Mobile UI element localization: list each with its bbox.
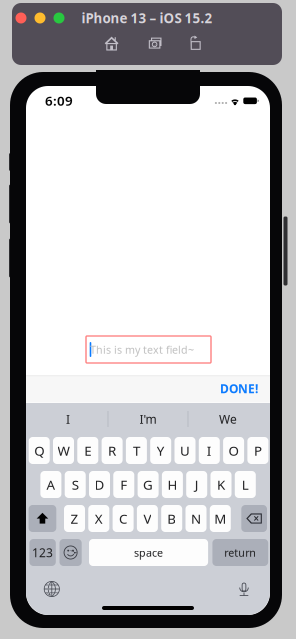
staticText: V (143, 510, 151, 527)
button[interactable]: K (210, 471, 231, 498)
button[interactable]: Dictation (233, 577, 255, 601)
button[interactable]: L (235, 471, 256, 498)
button[interactable]: B (161, 505, 182, 532)
button[interactable]: A (40, 471, 61, 498)
staticText: P (254, 442, 262, 459)
button[interactable]: R (102, 437, 123, 464)
staticText: E (84, 442, 91, 459)
staticText: T (133, 442, 140, 459)
staticText: R (108, 442, 116, 459)
staticText: H (167, 476, 177, 493)
staticText: Z (70, 510, 78, 527)
staticText: 123 (32, 544, 53, 560)
button[interactable]: P (247, 437, 268, 464)
staticText: M (214, 510, 226, 527)
staticText: 6:09 (45, 92, 73, 109)
staticText: D (94, 476, 104, 493)
staticText: space (134, 545, 163, 560)
staticText: N (191, 510, 201, 527)
button[interactable]: Home (99, 31, 125, 55)
staticText: O (229, 442, 239, 459)
staticText: X (95, 510, 103, 527)
button[interactable]: U (174, 437, 195, 464)
staticText: C (119, 510, 127, 527)
button[interactable]: Next keyboard (41, 578, 63, 600)
button[interactable]: Screenshot (142, 31, 168, 55)
button[interactable]: J (186, 471, 207, 498)
staticText: Q (34, 442, 44, 459)
button[interactable]: M (210, 505, 231, 532)
staticText: A (46, 476, 55, 493)
staticText: W (57, 442, 69, 459)
button[interactable]: F (113, 471, 134, 498)
staticText: Y (157, 442, 165, 459)
button[interactable]: T (126, 437, 147, 464)
button[interactable]: Record screen (182, 31, 208, 55)
button[interactable]: X (88, 505, 109, 532)
button[interactable]: We (189, 406, 267, 431)
staticText: G (143, 476, 153, 493)
button[interactable]: I'm (109, 406, 187, 431)
staticText: L (242, 476, 249, 493)
button[interactable]: Minimize (34, 12, 45, 23)
button[interactable]: I (199, 437, 220, 464)
staticText: iPhone 13 – iOS 15.2 (81, 9, 212, 27)
staticText: U (180, 442, 190, 459)
button[interactable]: space (89, 539, 208, 566)
button[interactable]: Delete (241, 505, 267, 532)
staticText: return (224, 545, 256, 560)
button[interactable]: H (162, 471, 183, 498)
button[interactable]: DONE! (212, 375, 266, 401)
staticText: This is my text field~ (90, 342, 194, 357)
button[interactable]: Close (15, 12, 26, 23)
staticText: We (219, 411, 237, 427)
button[interactable]: W (53, 437, 74, 464)
button[interactable]: 123 (29, 539, 56, 566)
button[interactable]: Emoji (59, 539, 82, 566)
staticText: J (195, 476, 199, 493)
button[interactable]: O (223, 437, 244, 464)
staticText: F (120, 476, 127, 493)
button[interactable]: E (77, 437, 98, 464)
button[interactable]: S (65, 471, 86, 498)
button[interactable]: Z (64, 505, 85, 532)
staticText: I (207, 442, 212, 459)
staticText: B (167, 510, 176, 527)
button[interactable]: Zoom (53, 12, 64, 23)
staticText: S (72, 476, 79, 493)
button[interactable]: N (185, 505, 206, 532)
staticText: K (217, 476, 225, 493)
button[interactable]: G (138, 471, 159, 498)
button[interactable]: return (212, 539, 268, 566)
button[interactable]: V (137, 505, 158, 532)
staticText: I'm (139, 411, 156, 427)
button[interactable]: C (113, 505, 134, 532)
button[interactable]: Shift (29, 505, 56, 532)
staticText: DONE! (220, 380, 258, 396)
button[interactable]: I (29, 406, 107, 431)
staticText: I (66, 411, 70, 427)
button[interactable]: Y (150, 437, 171, 464)
button[interactable]: D (89, 471, 110, 498)
button[interactable]: Q (29, 437, 50, 464)
